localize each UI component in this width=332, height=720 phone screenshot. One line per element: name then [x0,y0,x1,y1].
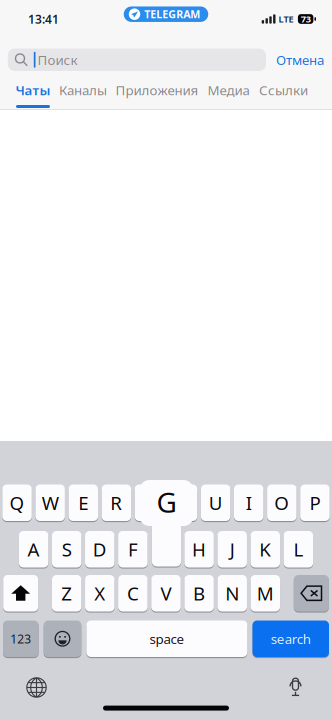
button[interactable]: 123 [3,620,39,657]
staticText: V [160,581,171,606]
button[interactable]: Чаты [12,81,54,110]
staticText: M [257,581,274,606]
staticText: K [259,537,271,562]
staticText: D [93,537,107,562]
staticText: 73 [301,13,311,25]
button[interactable]: Y [168,484,197,521]
button[interactable]: H [184,531,214,567]
button[interactable]: Shift [3,575,38,611]
button[interactable]: Медиа [203,81,253,110]
staticText: Ссылки [259,81,308,99]
staticText: I [246,490,252,515]
button[interactable]: F [118,531,148,567]
staticText: N [225,581,239,606]
staticText: J [230,537,235,562]
staticText: TELEGRAM [144,7,200,21]
staticText: Z [61,581,72,606]
button[interactable]: R [102,484,131,521]
button[interactable]: S [52,531,81,567]
staticText: LTE [279,13,294,25]
staticText: G [156,483,176,521]
button[interactable]: V [151,575,181,611]
button[interactable]: E [68,484,98,521]
staticText: Отмена [276,51,324,69]
button[interactable]: G [139,480,193,566]
button[interactable]: Dictation [287,677,303,698]
button[interactable]: search [252,620,329,657]
staticText: X [94,581,105,606]
staticText: B [193,581,205,606]
button[interactable]: X [85,575,115,611]
button[interactable]: K [250,531,280,567]
button[interactable]: M [251,575,280,611]
staticText: R [110,490,122,515]
button[interactable]: Emoji [44,620,81,657]
staticText: 13:41 [28,11,59,27]
staticText: Приложения [115,81,198,99]
button[interactable]: Приложения [112,81,202,110]
staticText: H [192,537,206,562]
button[interactable]: O [267,484,297,521]
button[interactable]: B [184,575,214,611]
staticText: Медиа [207,81,249,99]
staticText: F [128,537,138,562]
staticText: E [78,490,88,515]
button[interactable]: A [19,531,48,567]
staticText: search [271,630,311,648]
staticText: C [127,581,139,606]
button[interactable]: Delete [294,575,329,611]
staticText: P [309,490,320,515]
staticText: space [149,630,184,648]
button[interactable]: D [85,531,114,567]
button[interactable]: P [300,484,330,521]
staticText: A [28,537,40,562]
staticText: L [293,537,303,562]
button[interactable]: Ссылки [255,81,312,110]
button[interactable]: space [86,620,247,657]
button[interactable]: Отмена [276,51,324,69]
button[interactable]: T [135,484,164,521]
staticText: Чаты [15,81,50,99]
staticText: W [42,490,59,515]
staticText: Каналы [59,81,107,99]
button[interactable]: Z [52,575,81,611]
button[interactable]: N [217,575,247,611]
staticText: O [274,490,289,515]
button[interactable]: J [217,531,247,567]
button[interactable]: L [284,531,313,567]
staticText: Q [9,490,24,515]
button[interactable]: Каналы [55,81,110,110]
staticText: S [62,537,72,562]
button[interactable]: C [118,575,148,611]
button[interactable]: Q [2,484,32,521]
button[interactable]: I [234,484,263,521]
staticText: 123 [10,631,31,647]
staticText: Поиск [37,51,77,69]
staticText: U [209,490,223,515]
button[interactable]: W [35,484,65,521]
button[interactable]: Next keyboard [26,677,47,698]
button[interactable]: U [201,484,230,521]
